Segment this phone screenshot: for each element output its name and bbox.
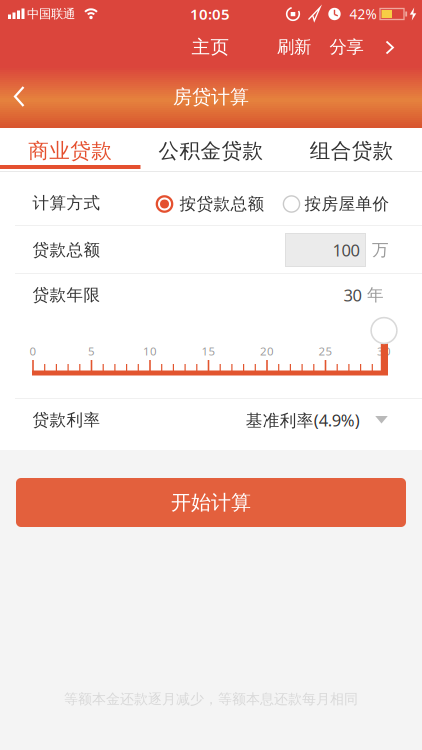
staticText: 房贷计算 [173,85,249,109]
staticText: 贷款年限 [32,285,100,305]
staticText: 分享 [329,36,363,58]
staticText: 按贷款总额 [179,193,264,214]
staticText: 30 [343,284,361,306]
staticText: 商业贷款 [28,138,112,164]
staticText: 贷款利率 [32,410,100,430]
staticText: 贷款总额 [32,240,100,260]
button[interactable]: 选择贷款利率 [246,409,388,431]
staticText: 10 [143,343,157,359]
staticText: 主页 [191,35,229,59]
staticText: 开始计算 [171,490,251,515]
button[interactable]: 贷款总额输入框 [285,233,366,267]
staticText: 10:05 [190,4,230,24]
button[interactable]: 商业贷款 [0,128,141,165]
staticText: 等额本金还款逐月减少，等额本息还款每月相同 [64,690,358,708]
staticText: 基准利率(4.9%) [246,409,360,431]
button[interactable]: Back [10,81,30,112]
staticText: 中国联通 [27,6,75,22]
button[interactable]: 开始计算 [16,478,406,527]
staticText: 25 [318,343,332,359]
staticText: 刷新 [277,36,311,58]
button[interactable]: More [384,39,395,56]
button[interactable]: 分享 [329,36,363,58]
button[interactable]: 组合贷款 [281,128,422,165]
staticText: 万 [372,239,389,260]
staticText: 组合贷款 [310,138,394,164]
staticText: 30 [377,343,391,359]
staticText: 按房屋单价 [304,193,389,214]
button[interactable]: 贷款年限滑块 [370,316,398,344]
staticText: 年 [367,284,384,305]
button[interactable]: 按房屋单价 [282,193,389,214]
staticText: 20 [260,343,274,359]
staticText: 100 [332,239,359,261]
staticText: 公积金贷款 [158,138,263,164]
staticText: 15 [201,343,215,359]
button[interactable]: 公积金贷款 [141,128,281,165]
button[interactable]: 刷新 [277,36,311,58]
staticText: 0 [29,343,36,359]
button[interactable]: 按贷款总额 [155,193,264,214]
staticText: 42% [349,5,376,23]
staticText: 5 [88,343,95,359]
staticText: 计算方式 [32,193,100,213]
button[interactable]: 主页 [191,35,229,59]
